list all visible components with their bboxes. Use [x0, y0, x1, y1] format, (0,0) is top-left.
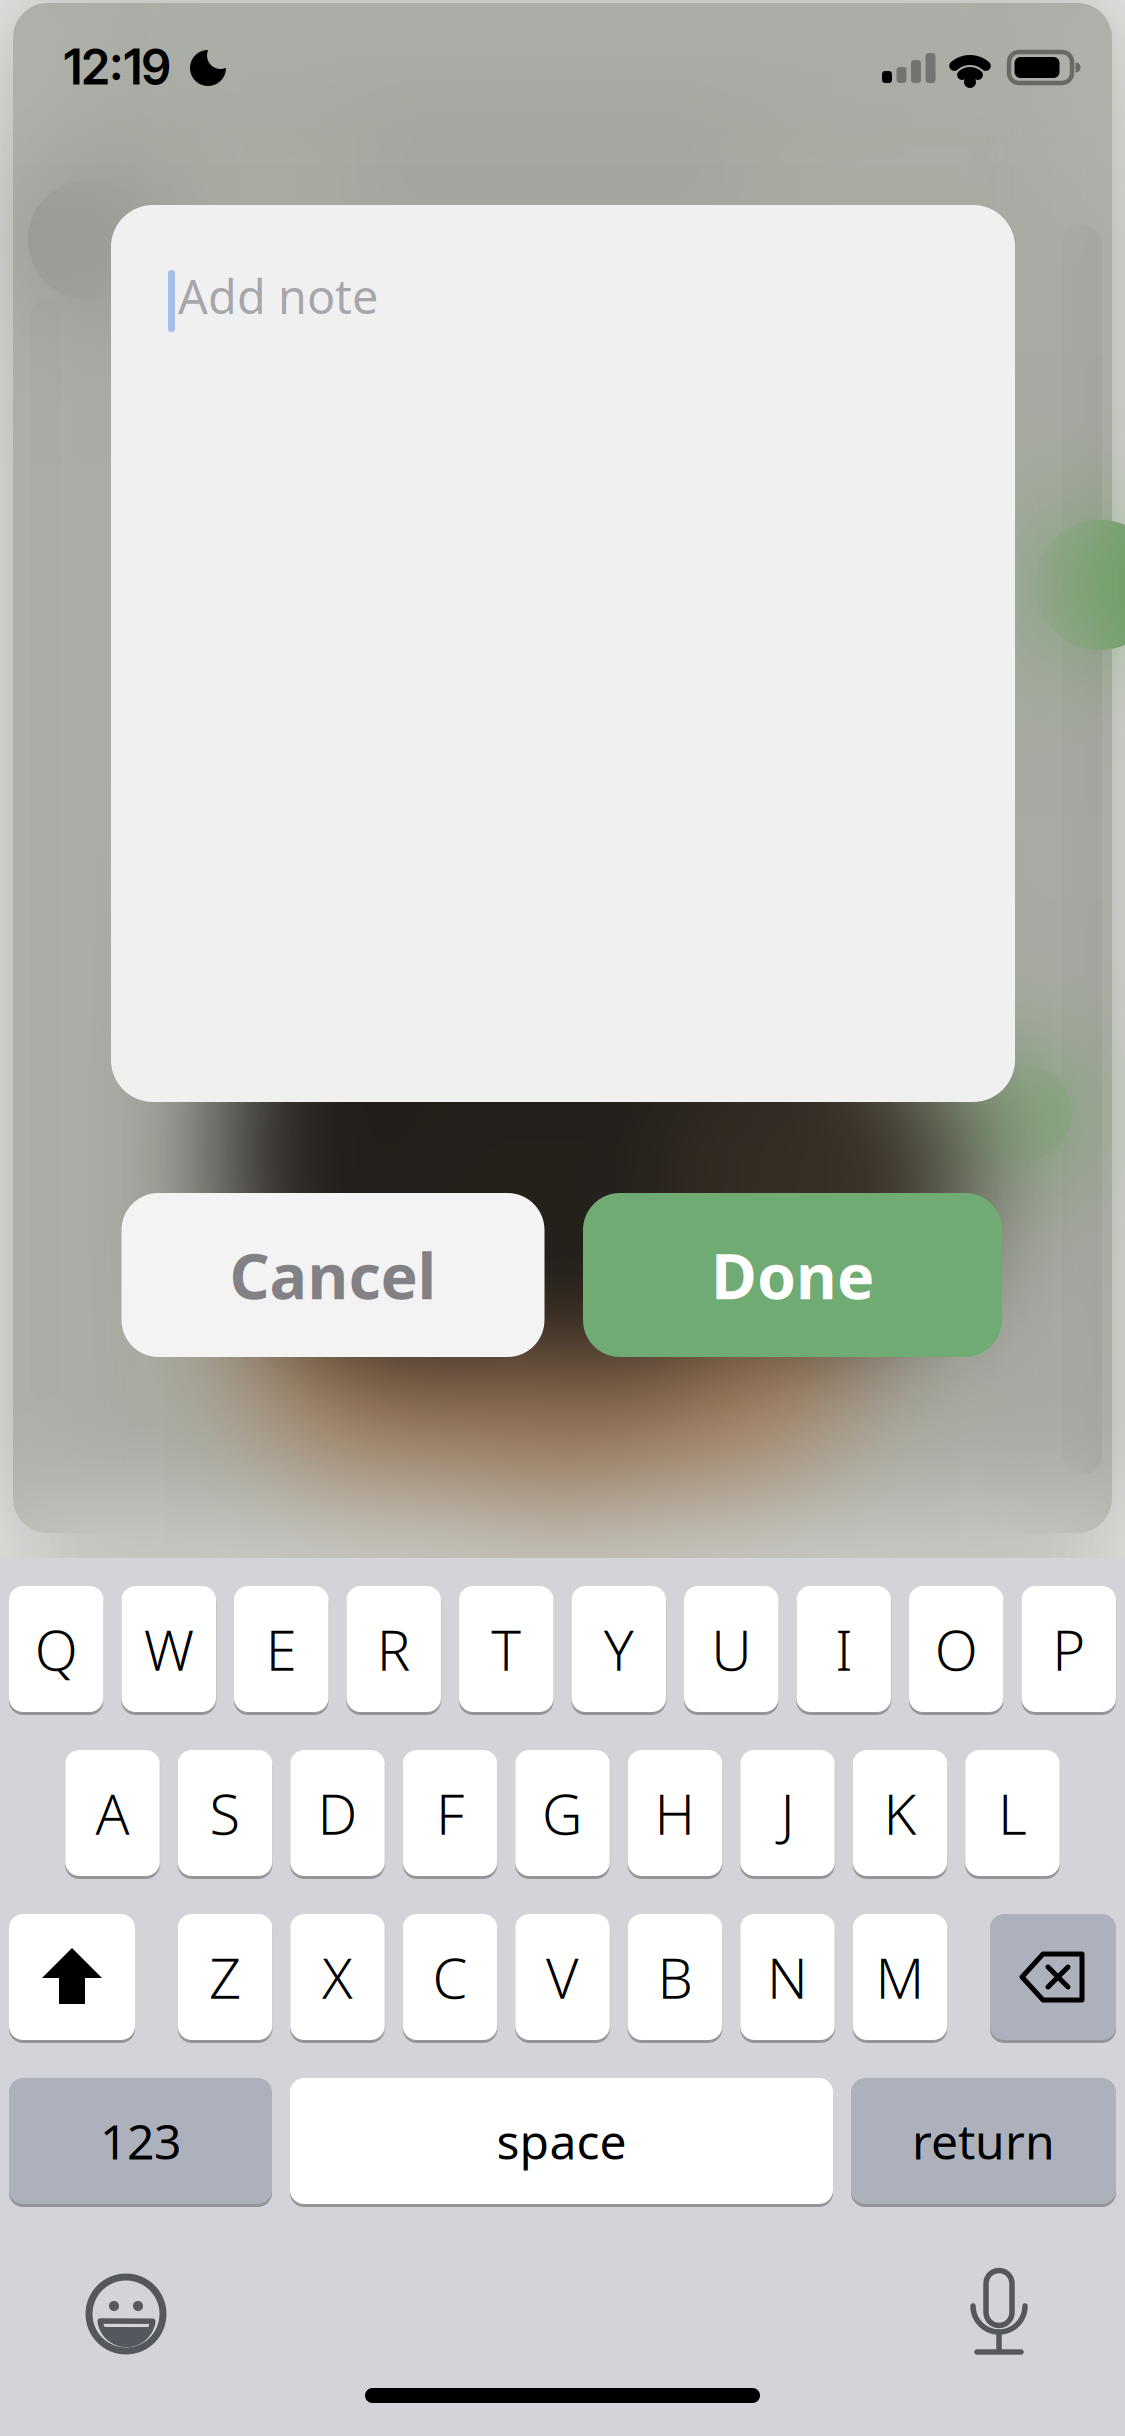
staticText: P: [1052, 1612, 1085, 1686]
button[interactable]: Q: [9, 1586, 103, 1712]
staticText: Add note: [178, 265, 378, 327]
button[interactable]: J: [740, 1750, 835, 1876]
staticText: Y: [604, 1612, 634, 1686]
button[interactable]: Y: [571, 1586, 666, 1712]
staticText: R: [377, 1612, 411, 1686]
button[interactable]: H: [628, 1750, 722, 1876]
button[interactable]: O: [909, 1586, 1003, 1712]
staticText: return: [912, 2109, 1055, 2173]
staticText: W: [144, 1612, 194, 1686]
button[interactable]: Done: [583, 1193, 1002, 1357]
button[interactable]: [949, 2272, 1049, 2372]
staticText: Cancel: [229, 1233, 436, 1317]
button[interactable]: T: [459, 1586, 553, 1712]
button[interactable]: X: [290, 1914, 385, 2040]
button[interactable]: F: [403, 1750, 497, 1876]
staticText: space: [496, 2109, 626, 2173]
staticText: N: [767, 1940, 808, 2014]
staticText: F: [436, 1776, 464, 1850]
button[interactable]: M: [853, 1914, 947, 2040]
staticText: I: [835, 1612, 852, 1686]
button[interactable]: D: [290, 1750, 385, 1876]
staticText: T: [491, 1612, 521, 1686]
button[interactable]: 123: [9, 2078, 272, 2204]
staticText: Q: [35, 1612, 78, 1686]
button[interactable]: P: [1021, 1586, 1116, 1712]
button[interactable]: return: [851, 2078, 1116, 2204]
button[interactable]: K: [853, 1750, 947, 1876]
button[interactable]: W: [121, 1586, 216, 1712]
button[interactable]: [9, 1914, 135, 2040]
staticText: G: [542, 1776, 583, 1850]
staticText: U: [711, 1612, 751, 1686]
button[interactable]: G: [515, 1750, 610, 1876]
staticText: J: [780, 1776, 794, 1850]
staticText: 12:19: [63, 38, 170, 96]
button[interactable]: B: [628, 1914, 722, 2040]
staticText: Done: [711, 1233, 874, 1317]
button[interactable]: I: [796, 1586, 891, 1712]
staticText: K: [883, 1776, 916, 1850]
button[interactable]: [76, 2264, 176, 2364]
button[interactable]: U: [684, 1586, 778, 1712]
staticText: L: [998, 1776, 1027, 1850]
button[interactable]: C: [403, 1914, 497, 2040]
button[interactable]: A: [65, 1750, 160, 1876]
staticText: A: [95, 1776, 129, 1850]
staticText: D: [317, 1776, 357, 1850]
staticText: H: [654, 1776, 695, 1850]
button[interactable]: Add note: [111, 205, 1015, 1102]
staticText: Z: [209, 1940, 241, 2014]
staticText: O: [935, 1612, 978, 1686]
staticText: 123: [100, 2109, 181, 2173]
staticText: B: [657, 1940, 692, 2014]
staticText: X: [322, 1940, 353, 2014]
button[interactable]: Cancel: [121, 1193, 544, 1357]
staticText: V: [546, 1940, 579, 2014]
button[interactable]: [990, 1914, 1116, 2040]
button[interactable]: N: [740, 1914, 835, 2040]
staticText: C: [432, 1940, 467, 2014]
button[interactable]: S: [178, 1750, 272, 1876]
button[interactable]: E: [234, 1586, 328, 1712]
button[interactable]: V: [515, 1914, 610, 2040]
staticText: M: [875, 1940, 924, 2014]
button[interactable]: Z: [178, 1914, 272, 2040]
button[interactable]: L: [965, 1750, 1060, 1876]
button[interactable]: space: [290, 2078, 833, 2204]
button[interactable]: R: [346, 1586, 441, 1712]
staticText: S: [209, 1776, 240, 1850]
staticText: E: [266, 1612, 297, 1686]
